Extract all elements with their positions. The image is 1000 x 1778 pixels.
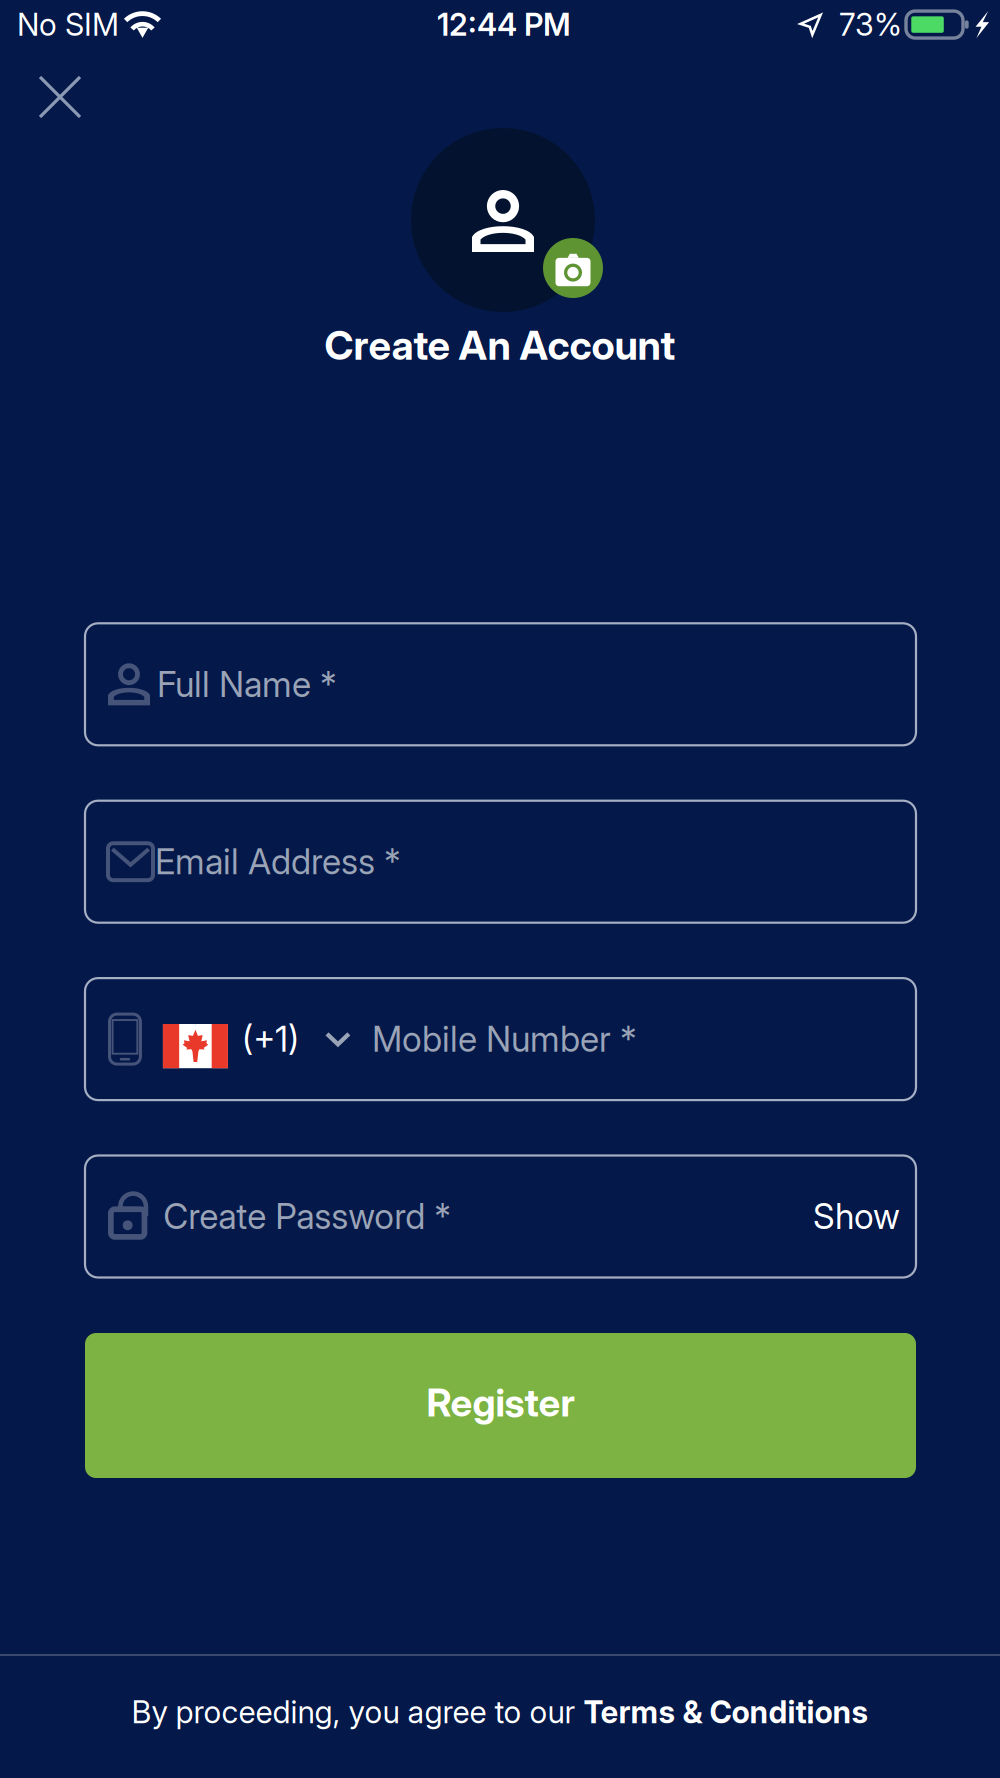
- button[interactable]: Register: [85, 1333, 916, 1478]
- staticText: 73%: [839, 6, 902, 43]
- staticText: (+1): [242, 1018, 299, 1060]
- staticText: 12:44 PM: [437, 6, 571, 43]
- staticText: Terms & Conditions: [583, 1693, 868, 1730]
- staticText: Register: [426, 1379, 574, 1426]
- button[interactable]: Change profile photo: [543, 238, 603, 298]
- staticText: Full Name *: [157, 663, 337, 705]
- button[interactable]: Show: [813, 1195, 900, 1237]
- staticText: No SIM: [17, 6, 119, 43]
- staticText: Mobile Number *: [372, 1018, 637, 1060]
- staticText: By proceeding, you agree to our: [131, 1693, 583, 1730]
- staticText: Create Password *: [163, 1195, 451, 1237]
- staticText: Create An Account: [324, 321, 675, 369]
- button[interactable]: By proceeding, you agree to our: [0, 1651, 1000, 1773]
- button[interactable]: Close: [12, 53, 108, 141]
- staticText: Email Address *: [155, 841, 401, 883]
- staticText: Show: [813, 1195, 900, 1237]
